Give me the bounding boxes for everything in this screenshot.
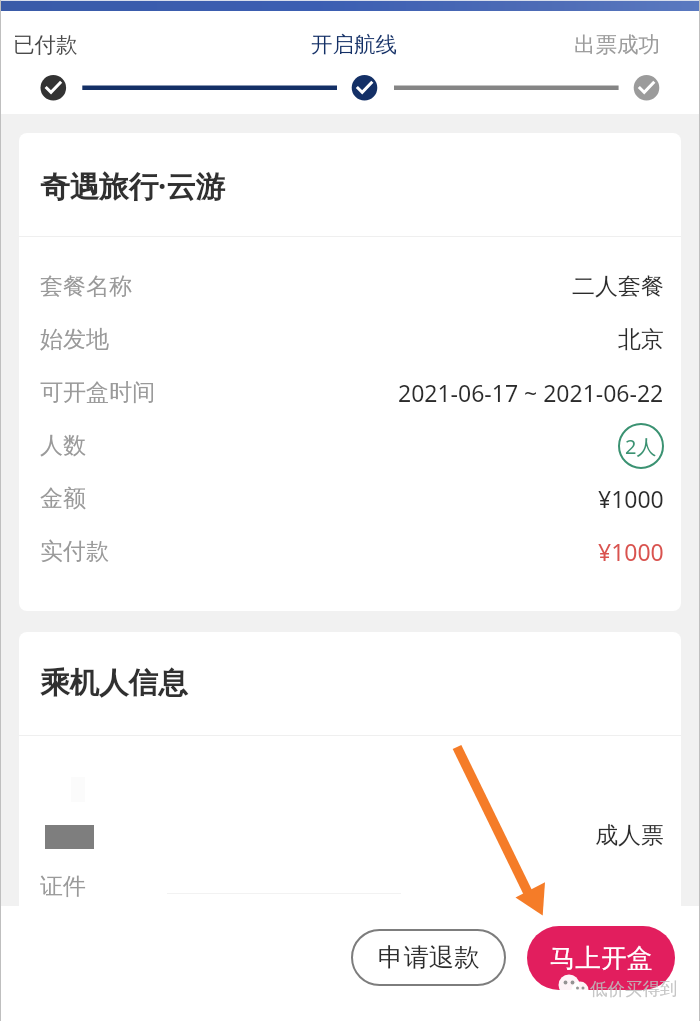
staticText: 乘机人信息 bbox=[40, 665, 188, 702]
button[interactable]: 人数 bbox=[19, 419, 681, 472]
staticText: 奇遇旅行·云游 bbox=[40, 165, 226, 205]
staticText: 北京 bbox=[618, 325, 664, 354]
staticText: 证件 bbox=[40, 872, 86, 901]
staticText: 申请退款 bbox=[378, 942, 480, 974]
button[interactable]: 套餐名称 bbox=[19, 260, 681, 313]
staticText: 套餐名称 bbox=[40, 272, 132, 301]
button[interactable]: 马上开盒 bbox=[527, 926, 675, 990]
staticText: ¥1000 bbox=[598, 536, 664, 567]
staticText: 成人票 bbox=[595, 821, 664, 850]
staticText: 开启航线 bbox=[311, 31, 397, 58]
button[interactable]: 始发地 bbox=[19, 313, 681, 366]
staticText: 马上开盒 bbox=[550, 942, 653, 974]
staticText: 实付款 bbox=[40, 537, 109, 566]
staticText: 始发地 bbox=[40, 325, 109, 354]
staticText: 人数 bbox=[40, 431, 86, 460]
staticText: 金额 bbox=[40, 484, 86, 513]
staticText: ¥1000 bbox=[598, 483, 664, 514]
button[interactable]: 成人票 bbox=[19, 736, 681, 951]
button[interactable]: 可开盒时间 bbox=[19, 366, 681, 419]
button[interactable]: 已付款 step, completed bbox=[0, 11, 234, 114]
button[interactable]: 奇遇旅行·云游 bbox=[19, 133, 681, 236]
button[interactable]: 出票成功 step, pending bbox=[467, 11, 700, 114]
staticText: 2021-06-17 ~ 2021-06-22 bbox=[398, 377, 664, 408]
staticText: 2人 bbox=[625, 433, 657, 460]
staticText: 出票成功 bbox=[574, 31, 660, 58]
staticText: 可开盒时间 bbox=[40, 378, 155, 407]
button[interactable]: 乘机人信息 bbox=[19, 632, 681, 735]
button[interactable]: 金额 bbox=[19, 472, 681, 525]
staticText: 已付款 bbox=[13, 31, 78, 58]
staticText: 低价买得到 bbox=[590, 978, 678, 1000]
staticText: 二人套餐 bbox=[572, 272, 664, 301]
button[interactable]: 实付款 bbox=[19, 525, 681, 578]
button[interactable]: 申请退款 bbox=[351, 929, 506, 986]
button[interactable]: 开启航线 step, current bbox=[234, 11, 467, 114]
